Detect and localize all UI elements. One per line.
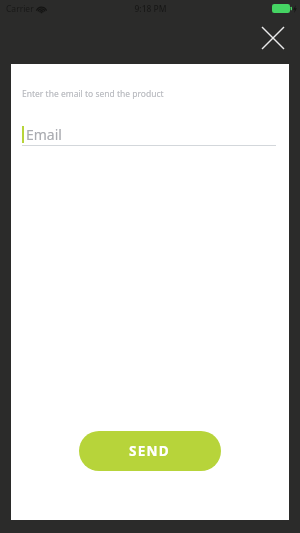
staticText: Email [26, 125, 62, 144]
button[interactable]: Email [22, 123, 276, 145]
button[interactable]: SEND [79, 431, 221, 471]
staticText: SEND [129, 442, 171, 460]
button[interactable]: Close [255, 20, 291, 56]
staticText: Carrier [6, 3, 34, 15]
staticText: 9:18 PM [134, 3, 167, 15]
staticText: Enter the email to send the product [22, 88, 164, 100]
